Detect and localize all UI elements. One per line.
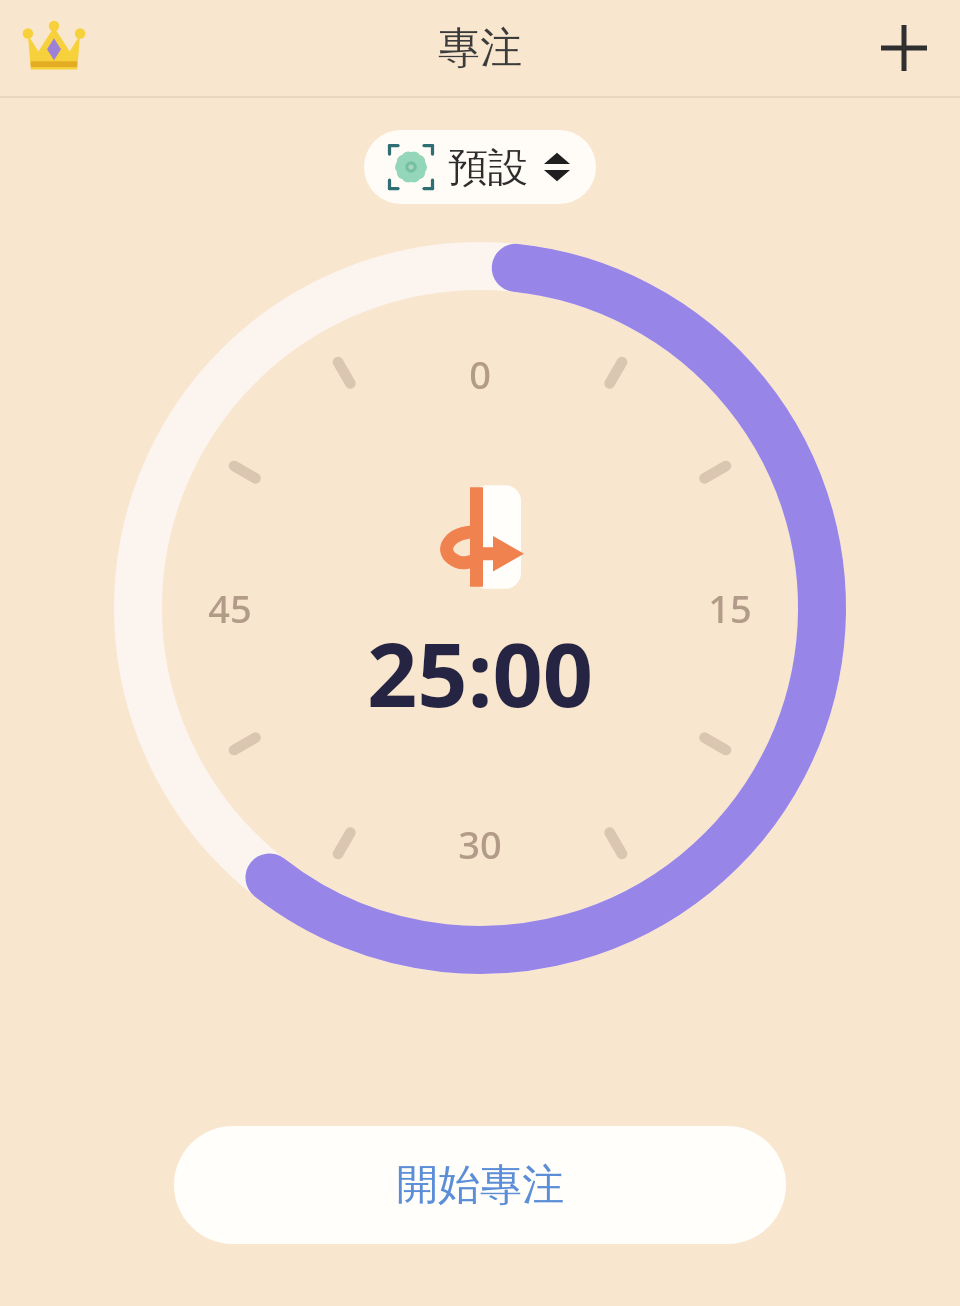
staticText: 開始專注 (396, 1159, 564, 1212)
staticText: 30 (458, 818, 502, 870)
button[interactable]: Add (864, 8, 944, 88)
staticText: 25:00 (367, 613, 594, 733)
staticText: 0 (469, 348, 491, 400)
staticText: 45 (208, 582, 252, 634)
button[interactable]: Premium (16, 10, 92, 86)
staticText: 15 (708, 582, 752, 634)
button[interactable]: 預設 (364, 130, 596, 204)
button[interactable]: 開始專注 (174, 1126, 786, 1244)
staticText: 預設 (448, 142, 528, 192)
staticText: 專注 (438, 22, 522, 75)
